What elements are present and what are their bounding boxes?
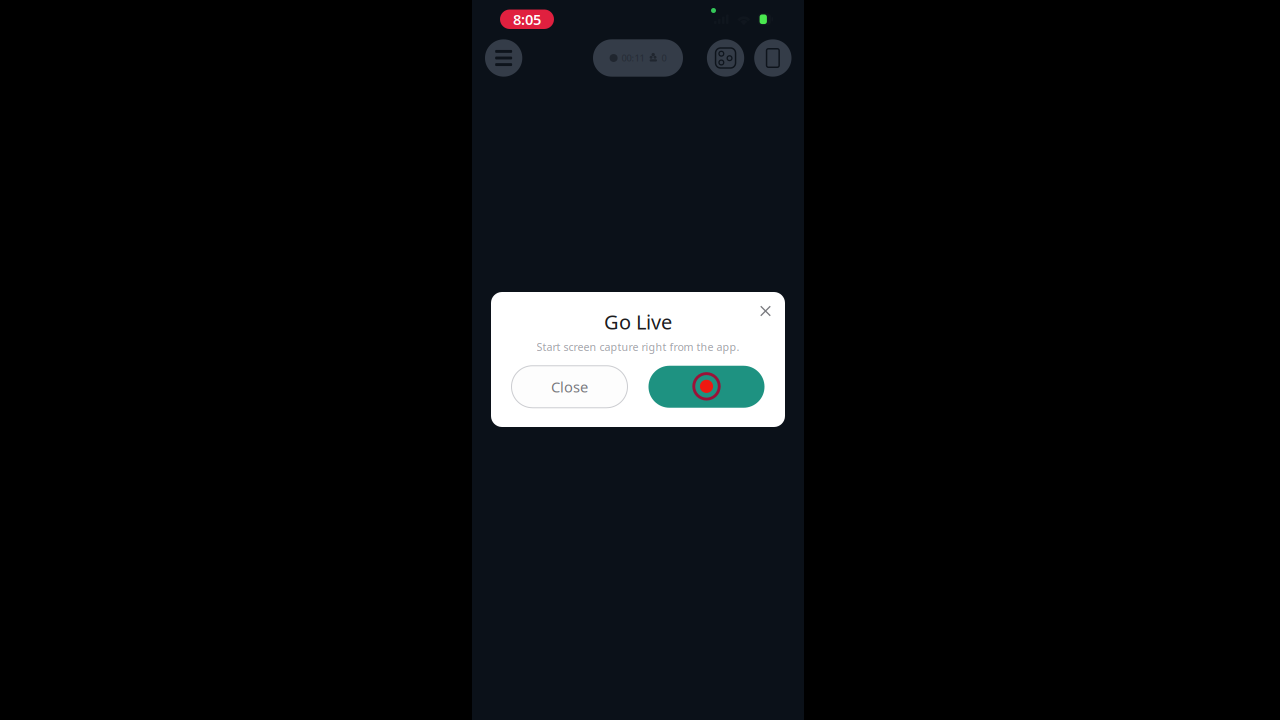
button[interactable]: Close	[511, 366, 627, 408]
staticText: 00:11	[622, 52, 645, 64]
button[interactable]: Recording status	[593, 39, 683, 77]
staticText: Start screen capture right from the app.	[536, 340, 739, 354]
staticText: Close	[551, 377, 588, 396]
button[interactable]: Start recording	[648, 366, 764, 408]
staticText: 0	[661, 52, 666, 64]
staticText: Go Live	[604, 308, 672, 335]
button[interactable]: Camera	[707, 39, 744, 77]
button[interactable]: Device	[754, 39, 791, 77]
staticText: 8:05	[513, 9, 541, 29]
button[interactable]: Close	[752, 298, 778, 324]
button[interactable]: Menu	[485, 39, 522, 77]
